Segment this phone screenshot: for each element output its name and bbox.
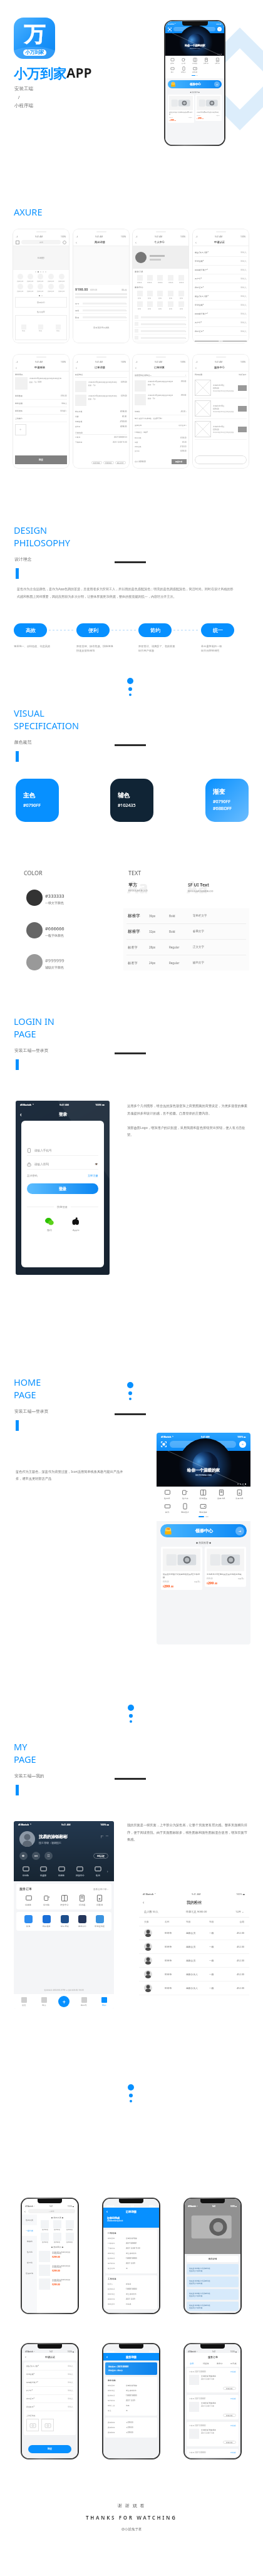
staticText: 订单号 20211208002 bbox=[189, 2424, 206, 2427]
button[interactable]: 首页 bbox=[14, 1994, 34, 2009]
button[interactable]: 冷凝水机 bbox=[212, 58, 223, 65]
staticText: 9:41 bbox=[212, 2205, 216, 2208]
staticText: 不开发票 › bbox=[178, 424, 187, 427]
button[interactable]: WeChat login bbox=[45, 1217, 54, 1232]
staticText: 订单号 20211208003 bbox=[189, 2451, 206, 2454]
staticText: ..ıl bbox=[76, 361, 78, 363]
button[interactable]: 简约 bbox=[138, 623, 172, 637]
staticText: 已完成 bbox=[126, 2303, 131, 2305]
button[interactable]: 低温直流变频户式采暖机组低温3匹分体变频 bbox=[161, 1547, 202, 1590]
button[interactable]: 待接单 bbox=[34, 1866, 53, 1877]
button[interactable]: 商品 bbox=[34, 1994, 54, 2009]
staticText: 我的粉丝 bbox=[187, 1900, 202, 1905]
button[interactable]: ¥20 bbox=[168, 80, 222, 88]
staticText: 请输入 bbox=[68, 2381, 73, 2384]
staticText: 联系客服 bbox=[93, 462, 100, 464]
button[interactable]: 热水器 bbox=[176, 1489, 194, 1500]
button[interactable]: 提交 bbox=[28, 2445, 71, 2453]
button[interactable]: 热泵机 bbox=[158, 1489, 176, 1500]
button[interactable]: 待付款 bbox=[17, 1866, 34, 1877]
staticText: 商品总额 bbox=[75, 410, 83, 413]
button[interactable]: 冰池机系列5匹侧出风恒温冰池热泵机欧 bbox=[195, 95, 222, 121]
staticText: .00 bbox=[174, 120, 177, 122]
staticText: .00 bbox=[202, 118, 204, 120]
button[interactable]: 待付款 bbox=[38, 1894, 56, 1906]
button[interactable]: 辅色 bbox=[110, 779, 153, 822]
staticText: 100% bbox=[121, 236, 126, 238]
button[interactable]: 待服务 bbox=[19, 1894, 38, 1906]
button[interactable]: Apple login bbox=[71, 1217, 80, 1232]
staticText: 提现银行账户* bbox=[26, 2381, 38, 2384]
button[interactable]: 登录 bbox=[27, 1183, 98, 1194]
button[interactable]: 购物车 bbox=[74, 1994, 94, 2009]
staticText: 金额 bbox=[225, 1920, 244, 1923]
button[interactable]: 全部 bbox=[185, 2362, 199, 2365]
staticText: ..ıl bbox=[135, 361, 138, 363]
button[interactable]: 查看详情 bbox=[226, 2441, 233, 2443]
button[interactable]: 冷凝水机 bbox=[230, 1489, 249, 1500]
button[interactable]: 技工考试 bbox=[56, 1915, 73, 1928]
staticText: 452.00 bbox=[225, 1945, 244, 1948]
staticText: COLOR bbox=[24, 869, 43, 876]
button[interactable]: 服务中 bbox=[213, 2362, 227, 2365]
button[interactable]: 待服务 bbox=[53, 1866, 71, 1877]
button[interactable]: 已取消 bbox=[91, 1894, 108, 1906]
button[interactable]: 待接单 bbox=[199, 2362, 213, 2365]
button[interactable]: 评价中心 bbox=[56, 1894, 73, 1906]
button[interactable]: 低温直流变频户式采暖机组低温3匹分体变频 bbox=[168, 95, 194, 123]
staticText: 一级 bbox=[209, 1987, 225, 1990]
staticText: 商品 bbox=[56, 330, 60, 331]
staticText: 团队/员工人数* bbox=[195, 251, 209, 254]
staticText: 标准字 bbox=[128, 929, 149, 934]
staticText: 待服务 bbox=[168, 281, 173, 283]
button[interactable]: 申请征流程 bbox=[91, 1915, 108, 1928]
button[interactable]: 售后 bbox=[89, 1866, 107, 1877]
staticText: VISUAL bbox=[14, 707, 44, 719]
button[interactable]: 查看详情 bbox=[226, 2387, 233, 2389]
button[interactable]: ¥20 bbox=[160, 1524, 247, 1537]
staticText: 一级 bbox=[209, 1959, 225, 1962]
staticText: 452.00 bbox=[225, 1959, 244, 1962]
staticText: 热水器 bbox=[182, 63, 185, 65]
button[interactable]: + bbox=[54, 1994, 74, 2009]
staticText: ‹ bbox=[76, 240, 77, 245]
button[interactable]: 热水器 bbox=[178, 58, 189, 65]
button[interactable]: 评价中心 bbox=[71, 1866, 89, 1877]
button[interactable]: 浴池模温 bbox=[194, 1489, 212, 1500]
staticText: 谢 谢 观 看 bbox=[118, 2503, 145, 2509]
button[interactable]: 便利 bbox=[76, 623, 110, 637]
staticText: 冰池机系列5匹侧出风恒温 bbox=[52, 2278, 70, 2280]
staticText: 热泵机 bbox=[164, 1497, 170, 1500]
button[interactable]: 热泵机 bbox=[167, 58, 178, 65]
staticText: 转包 bbox=[169, 308, 173, 309]
button[interactable]: 我的 bbox=[94, 1994, 114, 2009]
staticText: ‹ bbox=[195, 240, 197, 245]
button[interactable]: 已完成 bbox=[73, 1894, 91, 1906]
button[interactable]: 已完成 bbox=[227, 2362, 240, 2365]
button[interactable]: 采暖水机 bbox=[200, 58, 212, 65]
staticText: 视觉统一、@转迅速、信息高效 bbox=[14, 645, 71, 648]
staticText: 冰池机系列5匹侧出风恒温 bbox=[52, 2265, 70, 2267]
button[interactable]: 我的项目 bbox=[38, 1915, 56, 1928]
staticText: 低温直流变频户式采暖机组低温3匹分体变频 bbox=[163, 1573, 200, 1579]
staticText: 服务地址 bbox=[108, 2389, 123, 2392]
button[interactable]: Back bbox=[143, 1899, 145, 1906]
staticText: 低温直流变频户式采暖机组 bbox=[189, 2267, 210, 2270]
button[interactable]: 主色 bbox=[16, 779, 59, 822]
button[interactable]: 渐变 bbox=[205, 779, 249, 822]
button[interactable]: 查看详情 bbox=[226, 2414, 233, 2416]
staticText: 热泵机组 bbox=[42, 2229, 48, 2231]
button[interactable]: Back bbox=[20, 1111, 22, 1118]
staticText: 身份证号* bbox=[195, 286, 204, 289]
button[interactable]: 服务中心 bbox=[73, 1915, 91, 1928]
button[interactable]: 冰池机系列5匹侧出风恒温冰池热泵机欧 bbox=[205, 1547, 246, 1587]
button[interactable]: 采暖水机 bbox=[212, 1489, 230, 1500]
staticText: 商用采暖 bbox=[192, 71, 197, 73]
button[interactable]: 浴池模温 bbox=[189, 58, 200, 65]
button[interactable]: 高效 bbox=[14, 623, 47, 637]
button[interactable]: 已认证 bbox=[97, 1854, 105, 1857]
staticText: 正文文字 bbox=[193, 945, 204, 949]
button[interactable]: 转包 bbox=[19, 1915, 38, 1928]
button[interactable]: 统一 bbox=[201, 623, 234, 637]
staticText: 100% ▬ bbox=[237, 1435, 246, 1438]
